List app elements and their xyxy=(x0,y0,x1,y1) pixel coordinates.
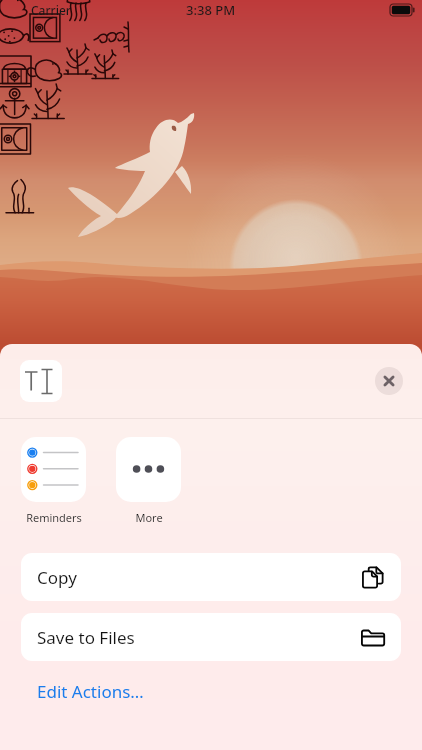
button[interactable]: Save to Files xyxy=(21,613,401,661)
staticText: Copy xyxy=(37,566,77,589)
staticText: More xyxy=(135,510,163,525)
staticText: Carrier xyxy=(31,2,71,18)
button[interactable]: Reminders xyxy=(21,419,86,525)
staticText: Edit Actions… xyxy=(37,680,144,703)
button[interactable]: More xyxy=(116,419,181,525)
button[interactable]: Close xyxy=(375,367,403,395)
staticText: Save to Files xyxy=(37,626,135,649)
button[interactable]: Copy xyxy=(21,553,401,601)
staticText: 3:38 PM xyxy=(186,1,236,19)
staticText: Reminders xyxy=(26,510,82,525)
button[interactable]: Edit Actions… xyxy=(0,670,422,712)
button[interactable]: Text document preview xyxy=(20,360,62,402)
